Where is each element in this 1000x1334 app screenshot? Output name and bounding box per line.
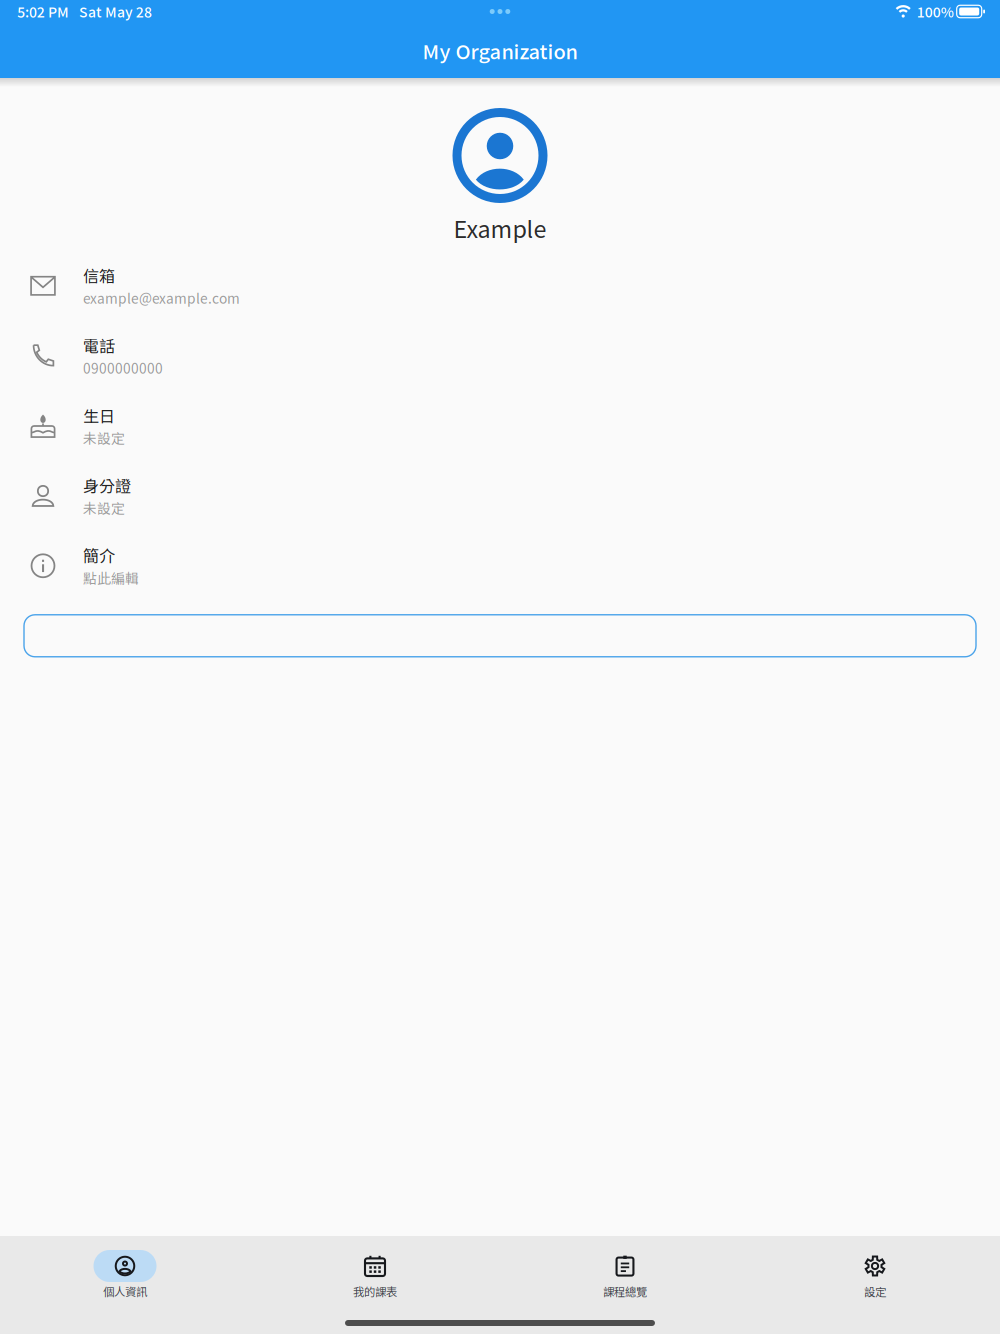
staticText: 5:02 PM bbox=[17, 1, 69, 22]
button[interactable]: 生日 bbox=[0, 391, 1000, 461]
staticText: 電話 bbox=[83, 334, 115, 357]
button[interactable]: 課程總覽 bbox=[500, 1236, 750, 1310]
staticText: 未設定 bbox=[83, 498, 125, 518]
staticText: 簡介 bbox=[83, 544, 115, 567]
staticText: 個人資訊 bbox=[103, 1283, 147, 1299]
staticText: 0900000000 bbox=[83, 358, 163, 378]
staticText: 100% bbox=[917, 1, 954, 22]
button[interactable]: 我的課表 bbox=[250, 1236, 500, 1310]
staticText: 點此編輯 bbox=[83, 568, 139, 588]
staticText: Example bbox=[453, 211, 546, 245]
button[interactable]: 個人資訊 bbox=[0, 1236, 250, 1310]
staticText: My Organization bbox=[422, 36, 577, 65]
staticText: 設定 bbox=[864, 1283, 886, 1299]
button[interactable]: 簡介 bbox=[0, 615, 1000, 657]
button[interactable]: 簡介 bbox=[0, 531, 1000, 601]
button[interactable]: 電話 bbox=[0, 321, 1000, 391]
button[interactable]: 信箱 bbox=[0, 251, 1000, 321]
staticText: 未設定 bbox=[83, 428, 125, 448]
staticText: Sat May 28 bbox=[79, 1, 152, 22]
staticText: 我的課表 bbox=[353, 1283, 397, 1299]
staticText: 生日 bbox=[83, 404, 115, 427]
button[interactable]: 身分證 bbox=[0, 461, 1000, 531]
button[interactable]: 設定 bbox=[750, 1236, 1000, 1310]
staticText: 課程總覽 bbox=[603, 1283, 647, 1299]
staticText: example@example.com bbox=[83, 288, 240, 308]
staticText: 信箱 bbox=[83, 264, 115, 287]
staticText: 身分證 bbox=[83, 474, 131, 497]
